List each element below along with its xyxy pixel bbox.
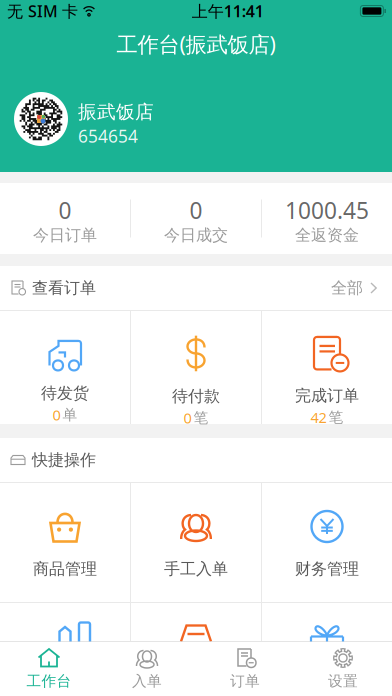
staticText: 单 (62, 406, 77, 424)
staticText: 工作台 (26, 672, 71, 690)
button[interactable]: 完成订单 (262, 311, 392, 424)
staticText: 完成订单 (295, 386, 359, 406)
staticText: 0 (58, 195, 71, 225)
staticText: 振武饭店 (78, 100, 154, 123)
button[interactable]: 商品管理 (0, 483, 130, 602)
staticText: 无 SIM 卡 (7, 0, 78, 22)
button[interactable]: 门店管理 (0, 603, 130, 641)
staticText: 订单 (230, 672, 260, 690)
staticText: 设置 (328, 672, 358, 690)
staticText: 0 (189, 195, 202, 225)
staticText: 0 (183, 408, 191, 428)
staticText: 待付款 (172, 386, 220, 406)
staticText: 全部 (331, 278, 363, 298)
button[interactable]: 订单 (196, 642, 294, 696)
button[interactable]: 设置 (294, 642, 392, 696)
button[interactable]: 待发货 (0, 311, 130, 424)
staticText: 今日订单 (33, 225, 97, 245)
staticText: 0 (52, 405, 60, 425)
button[interactable]: 手工入单 (131, 483, 261, 602)
staticText: 工作台(振武饭店) (116, 30, 275, 58)
button[interactable]: 全部 (331, 266, 378, 310)
staticText: 今日成交 (164, 225, 228, 245)
staticText: 待发货 (41, 383, 89, 403)
staticText: 上午11:41 (192, 0, 264, 22)
staticText: 入单 (132, 672, 162, 690)
staticText: 商品管理 (33, 559, 97, 579)
staticText: 笔 (193, 409, 208, 427)
button[interactable]: 优惠活动 (262, 603, 392, 641)
staticText: 全返资金 (295, 225, 359, 245)
staticText: 654654 (78, 124, 138, 147)
button[interactable]: 入单 (98, 642, 196, 696)
staticText: 财务管理 (295, 559, 359, 579)
button[interactable]: 财务管理 (262, 483, 392, 602)
staticText: 1000.45 (285, 195, 369, 225)
button[interactable]: 待付款 (131, 311, 261, 424)
button[interactable]: 库存管理 (131, 603, 261, 641)
staticText: 42 (310, 408, 326, 427)
staticText: 快捷操作 (32, 450, 96, 470)
staticText: 手工入单 (164, 559, 228, 579)
staticText: 笔 (328, 408, 343, 426)
staticText: 查看订单 (32, 278, 96, 298)
button[interactable]: 工作台 (0, 642, 98, 696)
